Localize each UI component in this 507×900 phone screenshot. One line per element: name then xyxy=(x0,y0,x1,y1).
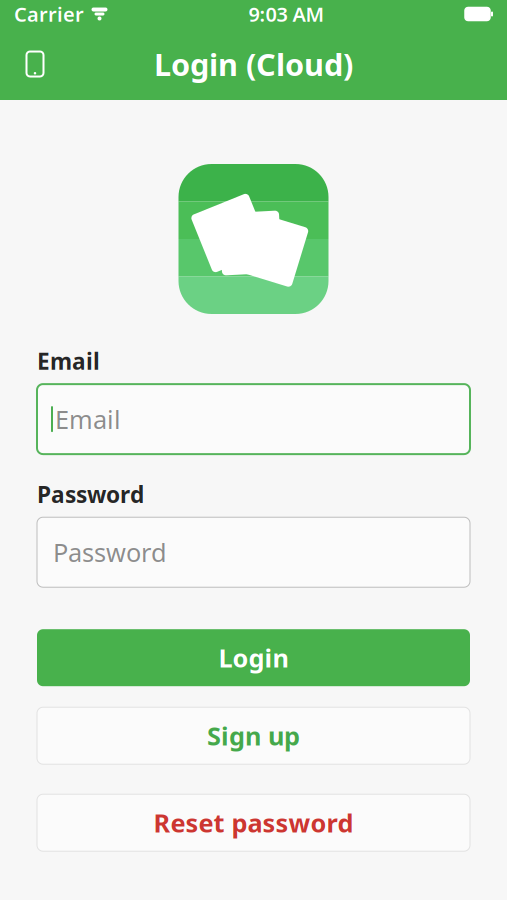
staticText: Login xyxy=(218,641,288,674)
staticText: Email xyxy=(37,346,100,376)
staticText: Reset password xyxy=(153,806,353,839)
button[interactable]: Login xyxy=(37,629,470,686)
staticText: Email xyxy=(55,402,121,436)
button[interactable]: Email xyxy=(37,384,470,454)
button[interactable]: Device xyxy=(12,41,58,87)
staticText: Login (Cloud) xyxy=(154,44,353,84)
staticText: 9:03 AM xyxy=(248,1,324,27)
staticText: Sign up xyxy=(207,719,300,752)
staticText: Password xyxy=(53,535,167,569)
button[interactable]: Password xyxy=(37,517,470,587)
button[interactable]: Sign up xyxy=(37,707,470,764)
staticText: Carrier xyxy=(14,1,84,27)
staticText: Password xyxy=(37,479,144,509)
button[interactable]: Reset password xyxy=(37,794,470,851)
